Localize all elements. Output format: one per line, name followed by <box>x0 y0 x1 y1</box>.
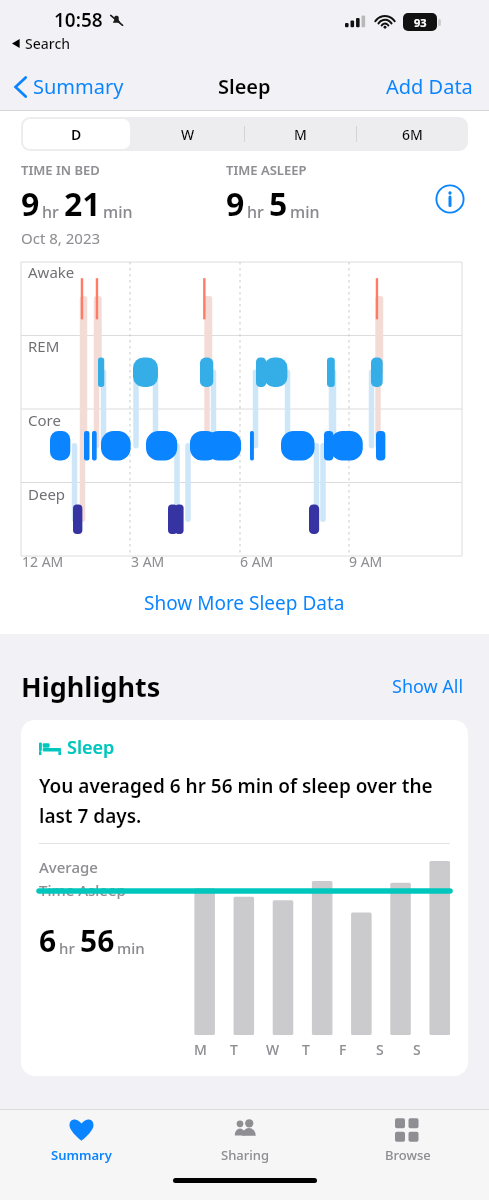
staticText: Sharing <box>221 1146 269 1164</box>
staticText: Show More Sleep Data <box>144 590 345 616</box>
button[interactable]: D <box>21 117 132 151</box>
staticText: Summary <box>33 73 124 100</box>
staticText: Show All <box>392 674 464 699</box>
staticText: min <box>290 201 320 223</box>
staticText: hr <box>247 201 264 223</box>
staticText: 5 <box>269 182 288 226</box>
staticText: Search <box>25 34 71 53</box>
staticText: 6M <box>402 125 423 144</box>
staticText: Average <box>39 857 98 877</box>
staticText: Sleep <box>218 73 271 100</box>
staticText: Browse <box>385 1146 431 1164</box>
staticText: 9 <box>21 182 40 226</box>
staticText: S <box>376 1040 384 1059</box>
staticText: Deep <box>28 484 66 504</box>
button[interactable]: Summary <box>0 1110 163 1168</box>
staticText: min <box>103 201 133 223</box>
button[interactable]: Sharing <box>163 1110 326 1168</box>
staticText: Summary <box>51 1146 112 1164</box>
button[interactable]: Browse <box>326 1110 489 1168</box>
staticText: min <box>117 938 145 958</box>
staticText: REM <box>28 336 60 356</box>
staticText: T <box>230 1040 238 1059</box>
staticText: 3 AM <box>131 552 165 571</box>
staticText: 9 AM <box>349 552 383 571</box>
staticText: hr <box>42 201 59 223</box>
staticText: 21 <box>64 182 101 226</box>
staticText: Oct 8, 2023 <box>21 228 101 248</box>
staticText: D <box>71 125 82 144</box>
staticText: Time Asleep <box>39 880 126 900</box>
staticText: Add Data <box>386 73 473 100</box>
button[interactable]: Summary <box>10 67 128 106</box>
staticText: S <box>413 1040 421 1059</box>
staticText: 6 AM <box>240 552 274 571</box>
staticText: 10:58 <box>54 7 103 33</box>
staticText: Core <box>28 410 61 430</box>
staticText: 6 <box>39 920 57 961</box>
button[interactable]: 6M <box>356 117 468 151</box>
button[interactable]: Info about sleep stages <box>432 181 468 217</box>
staticText: Highlights <box>21 668 161 705</box>
staticText: M <box>194 1040 207 1059</box>
button[interactable]: Show More Sleep Data <box>134 586 355 620</box>
staticText: hr <box>59 938 75 958</box>
staticText: 93 <box>414 15 427 30</box>
staticText: TIME IN BED <box>21 161 100 179</box>
staticText: F <box>339 1040 347 1059</box>
staticText: 9 <box>226 182 245 226</box>
staticText: You averaged 6 hr 56 min of sleep over t… <box>39 773 450 828</box>
staticText: Sleep <box>67 735 115 760</box>
staticText: 12 AM <box>22 552 64 571</box>
button[interactable]: Show All <box>388 670 468 703</box>
button[interactable]: W <box>132 117 244 151</box>
staticText: M <box>294 125 307 144</box>
staticText: T <box>302 1040 310 1059</box>
staticText: W <box>266 1040 280 1059</box>
staticText: 56 <box>80 920 115 961</box>
staticText: TIME ASLEEP <box>226 161 307 179</box>
button[interactable]: M <box>244 117 356 151</box>
staticText: Awake <box>28 262 75 282</box>
staticText: W <box>181 125 195 144</box>
button[interactable]: Sleep <box>21 720 468 1076</box>
button[interactable]: Add Data <box>382 67 477 106</box>
